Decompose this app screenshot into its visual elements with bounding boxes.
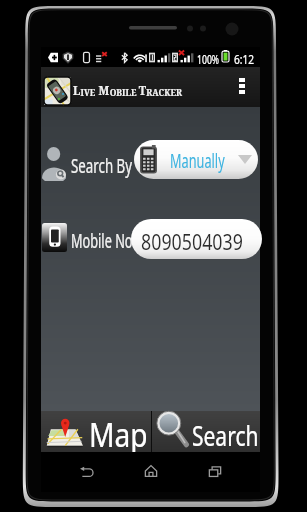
staticText: Map xyxy=(89,413,148,454)
staticText: RACKER xyxy=(146,86,182,98)
button[interactable]: Map xyxy=(41,411,151,452)
staticText: IVE xyxy=(80,86,98,98)
button[interactable]: 8090504039 xyxy=(131,219,262,259)
button[interactable]: Home xyxy=(131,458,171,484)
staticText: OBILE xyxy=(110,86,139,98)
staticText: T xyxy=(139,82,146,98)
button[interactable]: Manually xyxy=(134,140,258,179)
button[interactable]: Recent apps xyxy=(195,458,235,484)
staticText: Mobile No xyxy=(71,228,133,254)
button[interactable]: Back xyxy=(66,458,106,484)
button[interactable]: Search xyxy=(152,411,260,452)
staticText: Manually xyxy=(170,148,225,174)
staticText: 8090504039 xyxy=(141,226,243,256)
staticText: Search By xyxy=(71,153,133,179)
staticText: M xyxy=(98,82,110,98)
staticText: Search xyxy=(192,416,259,454)
button[interactable]: More options xyxy=(231,71,253,103)
staticText: 100% xyxy=(197,51,219,67)
staticText: L xyxy=(73,82,80,98)
staticText: 6:12 xyxy=(234,50,254,68)
